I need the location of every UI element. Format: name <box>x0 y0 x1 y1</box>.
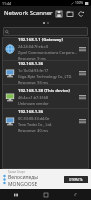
staticText: 1c:1b:0d:93:fe:17 <box>18 68 49 73</box>
staticText: Tevo Todai Co., Ltd. <box>18 122 53 127</box>
button[interactable]: ОТКРЫТЬ <box>64 176 88 183</box>
staticText: Unknown vendor <box>18 101 49 106</box>
button[interactable]: Row actions <box>78 42 87 56</box>
staticText: 0C:33:00:33:d4:0e <box>18 116 50 121</box>
button[interactable]: 192.168.1.36 <box>2 61 89 84</box>
button[interactable]: Recents <box>0 189 31 200</box>
staticText: Response: 9 ms <box>18 56 46 60</box>
staticText: ОТКРЫТЬ <box>69 178 83 182</box>
staticText: Giga-Byte Technology Co.,LTD. <box>18 74 73 79</box>
staticText: Response: 93 ms <box>18 80 48 84</box>
staticText: 192.168.1.38 (This device) <box>18 88 70 94</box>
staticText: 192.168.1.36 <box>18 61 44 67</box>
staticText: Response: 40 ms <box>18 128 48 132</box>
button[interactable]: Home <box>31 189 61 200</box>
button[interactable]: Row actions <box>78 66 87 80</box>
button[interactable]: 192.168.1.38 (This device) <box>2 85 89 108</box>
button[interactable]: 192.168.1.1 (Gateway) <box>2 37 89 60</box>
staticText: 100% <box>75 1 84 5</box>
button[interactable]: Row actions <box>78 90 87 104</box>
staticText: MONGOOSE <box>8 181 38 188</box>
button[interactable]: Триал Спорт <box>0 169 91 189</box>
staticText: 192.168.1.1 (Gateway) <box>18 37 63 43</box>
button[interactable]: Back <box>61 189 91 200</box>
staticText: Zyxel Communications Corporation <box>18 50 77 55</box>
staticText: 11:44 <box>2 1 11 6</box>
staticText: Триал Спорт <box>8 170 25 174</box>
button[interactable] <box>3 27 88 36</box>
staticText: 192.168.1.36 <box>18 109 44 115</box>
button[interactable]: Row actions <box>78 114 87 128</box>
button[interactable]: Save <box>53 8 64 19</box>
button[interactable]: Refresh <box>75 8 86 19</box>
button[interactable]: Open <box>64 8 75 19</box>
staticText: Велосипеды <box>8 174 39 181</box>
staticText: 24:24:04:7f:eb:c0 <box>18 44 49 49</box>
staticText: Network Scanner <box>4 9 53 17</box>
staticText: 46:4a:c1:b7:3f:68 <box>18 95 49 100</box>
button[interactable]: 192.168.1.36 <box>2 109 89 132</box>
